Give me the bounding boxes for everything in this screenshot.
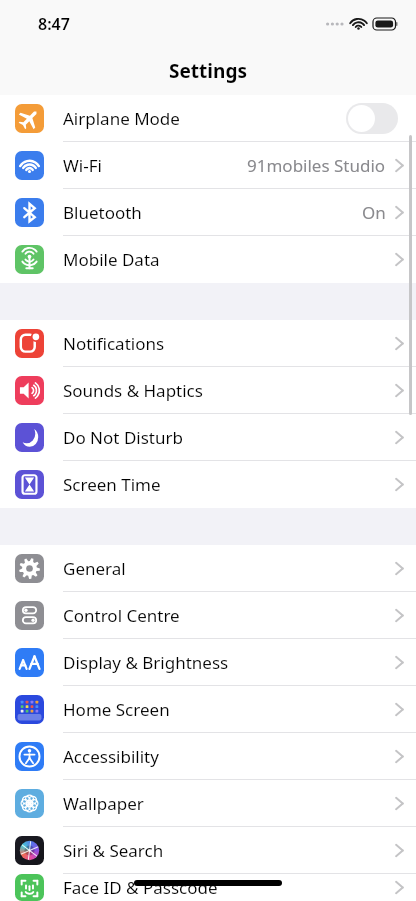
button[interactable]: Sounds & Haptics <box>0 367 416 414</box>
staticText: On <box>362 201 386 224</box>
staticText: Home Screen <box>63 698 170 721</box>
staticText: Wi-Fi <box>63 154 102 177</box>
staticText: Airplane Mode <box>63 107 180 130</box>
button[interactable]: Screen Time <box>0 461 416 508</box>
staticText: Accessibility <box>63 745 159 768</box>
button[interactable]: Bluetooth <box>0 189 416 236</box>
staticText: Siri & Search <box>63 839 164 862</box>
button[interactable] <box>348 105 396 132</box>
staticText: Control Centre <box>63 604 180 627</box>
staticText: 91mobiles Studio <box>247 154 386 177</box>
button[interactable]: Display & Brightness <box>0 639 416 686</box>
button[interactable]: Wi-Fi <box>0 142 416 189</box>
staticText: Face ID & Passcode <box>63 876 218 899</box>
staticText: Screen Time <box>63 473 161 496</box>
staticText: Mobile Data <box>63 248 160 271</box>
button[interactable]: Home Screen <box>0 686 416 733</box>
staticText: Sounds & Haptics <box>63 379 203 402</box>
staticText: Bluetooth <box>63 201 142 224</box>
staticText: Display & Brightness <box>63 651 229 674</box>
staticText: Settings <box>169 58 247 84</box>
button[interactable]: Mobile Data <box>0 236 416 283</box>
staticText: Wallpaper <box>63 792 144 815</box>
button[interactable]: Siri & Search <box>0 827 416 874</box>
staticText: Do Not Disturb <box>63 426 183 449</box>
button[interactable]: Do Not Disturb <box>0 414 416 461</box>
staticText: 8:47 <box>38 13 70 35</box>
staticText: General <box>63 557 126 580</box>
button[interactable]: Control Centre <box>0 592 416 639</box>
button[interactable]: Wallpaper <box>0 780 416 827</box>
button[interactable]: Face ID & Passcode <box>0 874 416 901</box>
button[interactable]: Notifications <box>0 320 416 367</box>
button[interactable]: Airplane Mode <box>0 95 416 142</box>
button[interactable]: General <box>0 545 416 592</box>
button[interactable]: Accessibility <box>0 733 416 780</box>
staticText: Notifications <box>63 332 165 355</box>
